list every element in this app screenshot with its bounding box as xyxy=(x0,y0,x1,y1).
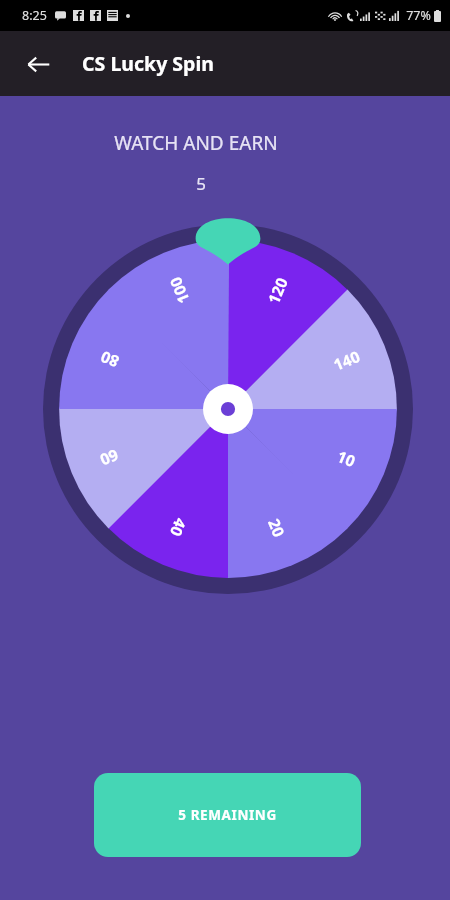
button[interactable]: Spin wheel xyxy=(43,224,413,594)
staticText: WATCH AND EARN xyxy=(0,130,421,156)
button[interactable]: Back xyxy=(14,40,62,88)
staticText: 5 REMAINING xyxy=(94,806,361,824)
staticText: 8:25 xyxy=(22,7,47,24)
staticText: 5 xyxy=(0,172,426,195)
staticText: CS Lucky Spin xyxy=(82,50,214,77)
button[interactable]: 5 REMAINING xyxy=(94,773,361,857)
staticText: 77% xyxy=(406,7,431,24)
